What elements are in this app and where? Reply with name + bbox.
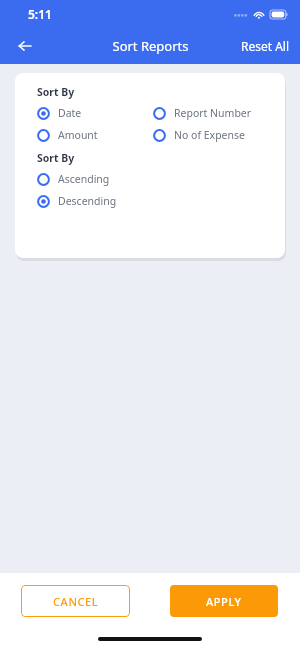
staticText: Date [58,106,82,120]
button[interactable]: CANCEL [21,585,130,617]
staticText: 5:11 [28,6,52,22]
button[interactable]: No of Expense [153,124,245,146]
staticText: Report Number [174,106,252,120]
button[interactable]: Reset All [231,34,300,58]
staticText: CANCEL [53,594,99,609]
staticText: No of Expense [174,128,245,142]
staticText: Ascending [58,172,110,186]
staticText: Sort By [37,151,75,165]
staticText: Descending [58,194,117,208]
button[interactable]: Descending [37,190,117,212]
staticText: Sort Reports [112,37,189,55]
button[interactable]: Date [37,102,82,124]
button[interactable]: APPLY [170,585,278,617]
staticText: Amount [58,128,98,142]
button[interactable]: Report Number [153,102,252,124]
button[interactable]: Back [10,31,40,61]
staticText: APPLY [206,594,242,609]
staticText: Reset All [241,38,290,54]
button[interactable]: Ascending [37,168,110,190]
staticText: Sort By [37,85,75,99]
button[interactable]: Amount [37,124,98,146]
